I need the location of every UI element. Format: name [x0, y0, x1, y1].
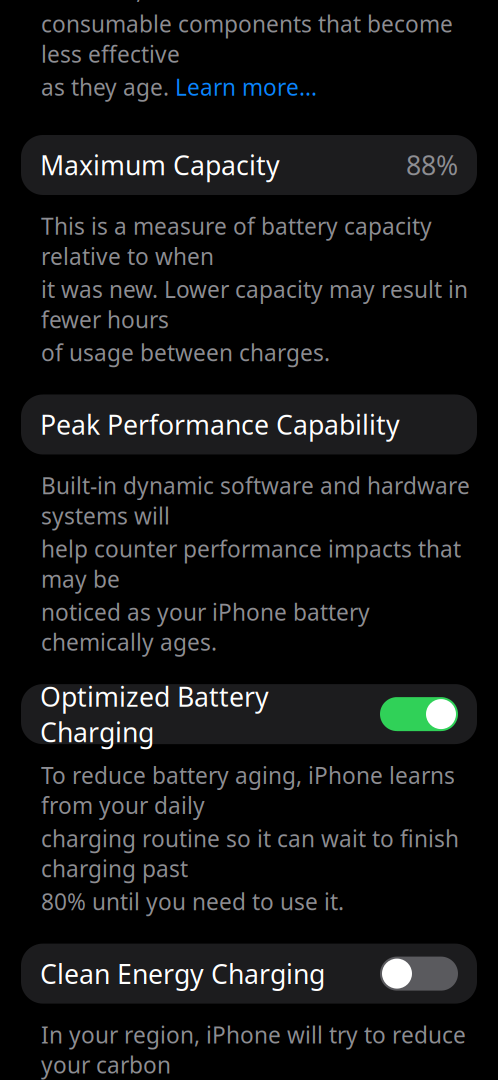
button[interactable]: Optimized Battery Charging — [21, 684, 477, 744]
button[interactable]: Peak Performance Capability — [21, 394, 477, 454]
staticText: Optimized Battery Charging — [40, 679, 269, 749]
button[interactable]: Learn more... — [175, 72, 317, 102]
button[interactable]: Maximum Capacity — [21, 135, 477, 195]
button[interactable]: Clean Energy Charging — [21, 944, 477, 1004]
staticText: In your region, iPhone will try to reduc… — [41, 1020, 466, 1080]
staticText: of usage between charges. — [41, 337, 330, 367]
staticText: help counter performance impacts that ma… — [41, 534, 461, 594]
staticText: 88% — [406, 147, 458, 183]
staticText: 80% until you need to use it. — [41, 886, 344, 917]
staticText: Phone batteries, like all rechargeable b… — [41, 0, 439, 6]
staticText: This is a measure of battery capacity re… — [41, 211, 432, 271]
staticText: Built-in dynamic software and hardware s… — [41, 470, 470, 531]
staticText: it was new. Lower capacity may result in… — [41, 274, 468, 334]
staticText: To reduce battery aging, iPhone learns f… — [41, 760, 455, 820]
staticText: as they age. — [41, 72, 175, 102]
staticText: Maximum Capacity — [40, 147, 280, 183]
staticText: Clean Energy Charging — [40, 956, 325, 991]
staticText: Learn more... — [175, 72, 317, 102]
staticText: consumable components that become less e… — [41, 9, 453, 69]
staticText: charging routine so it can wait to finis… — [41, 823, 459, 883]
staticText: Peak Performance Capability — [40, 407, 400, 442]
staticText: noticed as your iPhone battery chemicall… — [41, 597, 370, 657]
